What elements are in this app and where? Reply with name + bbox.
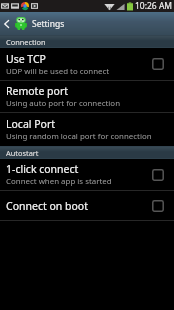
- button[interactable]: 1-click connect: [152, 169, 164, 181]
- button[interactable]: Remote port: [0, 81, 174, 112]
- staticText: Remote port: [6, 84, 69, 98]
- staticText: Local Port: [6, 117, 56, 131]
- staticText: Autostart: [6, 148, 39, 158]
- staticText: UDP will be used to connect: [6, 66, 110, 77]
- button[interactable]: Local Port: [0, 113, 174, 146]
- button[interactable]: Connect on boot: [152, 200, 164, 212]
- staticText: 1-click connect: [6, 162, 79, 176]
- staticText: Connection: [6, 37, 46, 47]
- staticText: 10:26 AM: [135, 0, 173, 12]
- button[interactable]: Use TCP: [152, 58, 164, 70]
- button[interactable]: 1-click connect: [0, 159, 174, 190]
- button[interactable]: Use TCP: [0, 48, 174, 80]
- button[interactable]: Navigate up: [0, 12, 13, 35]
- button[interactable]: Connect on boot: [0, 191, 174, 220]
- staticText: Connect on boot: [6, 199, 88, 213]
- staticText: Settings: [32, 18, 65, 30]
- staticText: Using auto port for connection: [6, 98, 121, 109]
- staticText: Use TCP: [6, 52, 46, 66]
- staticText: Using random local port for connection: [6, 131, 152, 142]
- staticText: Connect when app is started: [6, 176, 112, 187]
